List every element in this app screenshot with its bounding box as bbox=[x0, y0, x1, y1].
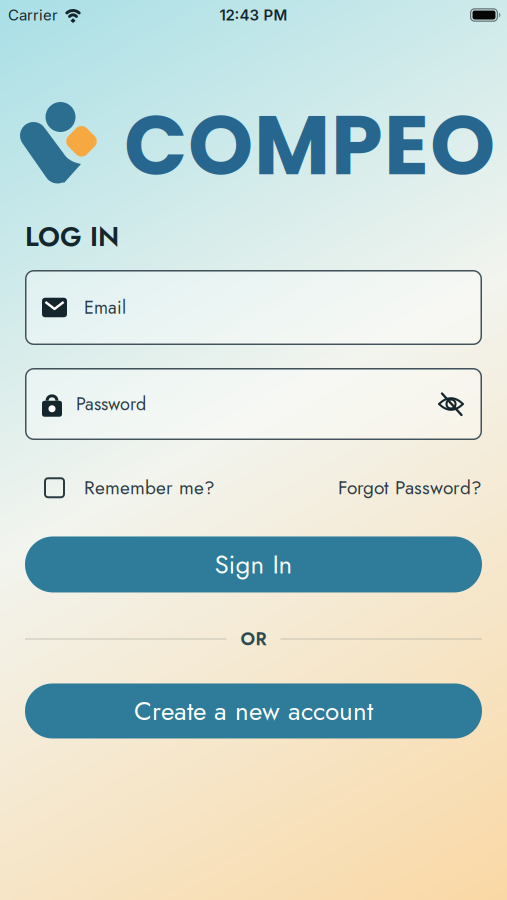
staticText: LOG IN bbox=[25, 217, 119, 256]
staticText: Remember me? bbox=[84, 474, 215, 501]
staticText: 12:43 PM bbox=[219, 6, 287, 24]
staticText: Create a new account bbox=[134, 692, 373, 730]
staticText: OR bbox=[240, 626, 266, 652]
button[interactable]: Remember me? bbox=[44, 474, 215, 501]
staticText: COMPEO bbox=[124, 87, 495, 203]
button[interactable]: Forgot Password? bbox=[338, 474, 482, 501]
button[interactable]: Password bbox=[25, 368, 482, 440]
button[interactable]: Show password bbox=[437, 391, 465, 417]
staticText: Forgot Password? bbox=[338, 474, 482, 501]
staticText: Password bbox=[76, 391, 146, 417]
button[interactable]: Sign In bbox=[25, 536, 482, 592]
staticText: Sign In bbox=[214, 546, 292, 583]
button[interactable]: Email bbox=[25, 270, 482, 345]
staticText: Email bbox=[84, 294, 126, 320]
button[interactable]: Create a new account bbox=[25, 683, 482, 738]
staticText: Carrier bbox=[8, 6, 58, 24]
